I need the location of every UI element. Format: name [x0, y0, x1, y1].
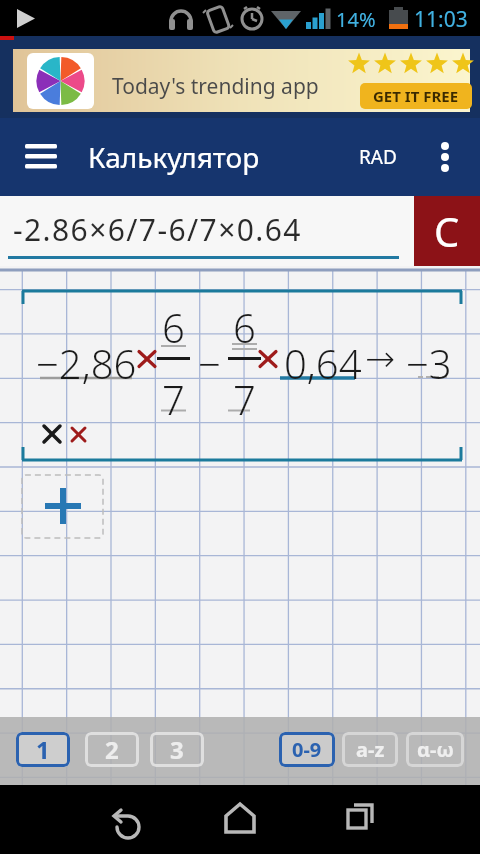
staticText: 7: [233, 372, 256, 426]
button[interactable]: 1: [16, 732, 70, 767]
staticText: −3: [406, 336, 452, 390]
button[interactable]: α-ω: [406, 732, 464, 767]
button[interactable]: [14, 134, 68, 180]
button[interactable]: GET IT FREE: [360, 83, 472, 109]
staticText: 0-9: [292, 736, 322, 763]
button[interactable]: Today's trending app: [13, 49, 470, 112]
button[interactable]: [424, 130, 468, 184]
staticText: −2,86: [36, 336, 137, 390]
staticText: GET IT FREE: [373, 86, 459, 106]
button[interactable]: RAD: [340, 134, 416, 180]
staticText: RAD: [359, 144, 397, 170]
staticText: →: [365, 338, 396, 380]
staticText: Today's trending app: [112, 72, 319, 101]
button[interactable]: [320, 790, 400, 850]
staticText: 2: [105, 733, 119, 766]
button[interactable]: 2: [85, 732, 139, 767]
staticText: Калькулятор: [88, 138, 260, 176]
staticText: 7: [162, 372, 185, 426]
staticText: a-z: [356, 736, 385, 763]
staticText: 11:03: [414, 5, 468, 34]
staticText: 14%: [336, 6, 376, 33]
staticText: α-ω: [417, 736, 454, 763]
button[interactable]: 0-9: [279, 732, 335, 767]
button[interactable]: C: [414, 196, 480, 266]
button[interactable]: 3: [150, 732, 204, 767]
staticText: −: [198, 336, 221, 390]
staticText: 6: [233, 300, 256, 354]
button[interactable]: a-z: [342, 732, 398, 767]
staticText: C: [434, 204, 460, 258]
staticText: 1: [36, 733, 50, 766]
button[interactable]: [200, 790, 280, 850]
staticText: -2.86×6/7-6/7×0.64: [13, 209, 302, 250]
staticText: 6: [162, 300, 185, 354]
staticText: 0,64: [284, 336, 362, 390]
button[interactable]: [80, 790, 160, 850]
staticText: 3: [170, 733, 184, 766]
